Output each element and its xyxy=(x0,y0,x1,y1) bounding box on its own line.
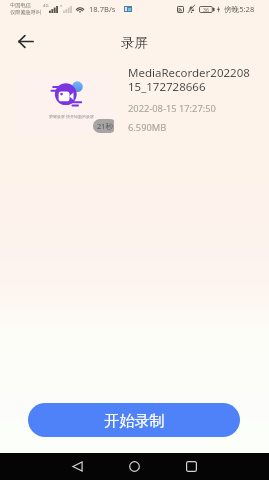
staticText: 18.7B/s xyxy=(89,4,116,14)
staticText: 中国电信 xyxy=(10,2,31,9)
staticText: 录屏 xyxy=(121,34,148,51)
staticText: x xyxy=(60,3,63,9)
staticText: 36 xyxy=(203,6,209,13)
button[interactable]: Home xyxy=(114,453,154,480)
staticText: 21秒 xyxy=(97,121,114,131)
button[interactable]: Back xyxy=(11,26,41,56)
staticText: 荣耀录屏 快开始新的录屏 xyxy=(49,114,95,119)
button[interactable]: Recents xyxy=(171,453,211,480)
button[interactable]: 开始录制 xyxy=(28,403,240,437)
staticText: 4G xyxy=(43,3,49,9)
staticText: 傍晚5:28 xyxy=(224,4,255,14)
staticText: 6.590MB xyxy=(128,121,167,134)
staticText: 仅限紧急呼叫 xyxy=(10,9,42,16)
staticText: 2022-08-15 17:27:50 xyxy=(128,102,216,115)
staticText: 开始录制 xyxy=(104,411,165,430)
button[interactable]: Back xyxy=(57,453,97,480)
staticText: MediaRecorder202208 15_172728666 xyxy=(128,65,250,95)
